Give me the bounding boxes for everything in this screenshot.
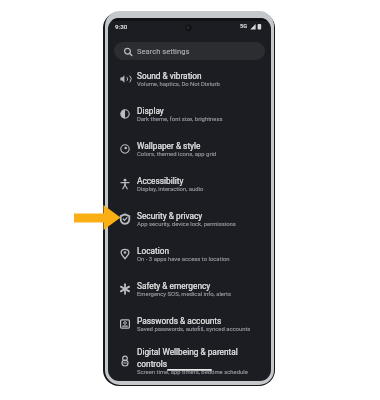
button[interactable]: Security & privacy (108, 202, 271, 237)
staticText: Display (137, 106, 164, 116)
staticText: Passwords & accounts (137, 316, 222, 326)
staticText: Volume, haptics, Do Not Disturb (137, 81, 220, 88)
button[interactable]: Accessibility (108, 167, 271, 202)
button[interactable]: Passwords & accounts (108, 307, 271, 342)
staticText: Screen time, app timers, bedtime schedul… (137, 369, 248, 376)
staticText: On - 3 apps have access to location (137, 256, 230, 263)
staticText: Digital Wellbeing & parental (137, 347, 238, 357)
button[interactable]: Safety & emergency (108, 272, 271, 307)
staticText: Wallpaper & style (137, 141, 201, 151)
staticText: Emergency SOS, medical info, alerts (137, 291, 232, 298)
staticText: Sound & vibration (137, 71, 202, 81)
staticText: Display, interaction, audio (137, 186, 204, 193)
button[interactable]: Display (108, 97, 271, 132)
staticText: 9:30 (115, 23, 128, 30)
staticText: Search settings (137, 47, 190, 56)
button[interactable]: Wallpaper & style (108, 132, 271, 167)
staticText: Dark theme, font size, brightness (137, 116, 223, 123)
staticText: App security, device lock, permissions (137, 221, 236, 228)
button[interactable]: Sound & vibration (108, 62, 271, 97)
staticText: controls (137, 359, 168, 369)
staticText: 5G (240, 23, 247, 30)
staticText: Safety & emergency (137, 281, 211, 291)
staticText: Colors, themed icons, app grid (137, 151, 217, 158)
staticText: Location (137, 246, 170, 256)
staticText: Saved passwords, autofill, synced accoun… (137, 326, 251, 333)
button[interactable]: Search settings (114, 42, 265, 60)
button[interactable]: Digital Wellbeing & parental (108, 342, 271, 381)
staticText: Security & privacy (137, 211, 203, 221)
button[interactable]: Location (108, 237, 271, 272)
staticText: Accessibility (137, 176, 184, 186)
